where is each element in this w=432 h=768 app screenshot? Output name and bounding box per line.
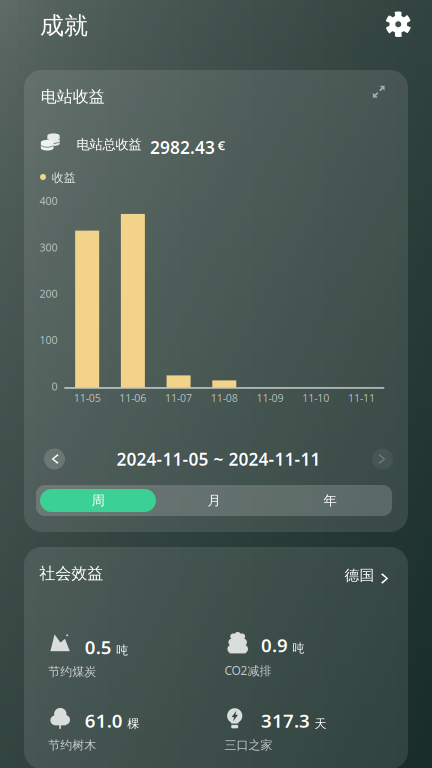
button[interactable]: Settings (376, 2, 420, 46)
button[interactable]: Next week (367, 444, 397, 474)
staticText: 德国 (344, 566, 374, 584)
button[interactable]: Previous week (39, 444, 69, 474)
staticText: 300 (39, 240, 57, 254)
staticText: 月 (207, 492, 220, 509)
staticText: 节约煤炭 (48, 664, 96, 679)
staticText: 电站收益 (41, 87, 105, 106)
staticText: € (217, 136, 225, 154)
staticText: 400 (39, 194, 57, 208)
staticText: 吨 (116, 643, 128, 658)
staticText: 0.9 (261, 633, 288, 657)
staticText: 11-11 (348, 391, 375, 405)
staticText: 317.3 (261, 708, 310, 733)
staticText: 收益 (52, 170, 76, 185)
staticText: 0.5 (85, 635, 112, 659)
button[interactable]: 年 (272, 489, 388, 512)
staticText: 周 (91, 492, 104, 509)
button[interactable]: Expand chart (364, 77, 394, 107)
staticText: 200 (39, 286, 57, 301)
staticText: 年 (323, 492, 336, 509)
staticText: 11-10 (302, 391, 329, 405)
staticText: 三口之家 (224, 738, 272, 753)
button[interactable]: 德国 (344, 558, 412, 588)
button[interactable]: 月 (156, 489, 272, 512)
staticText: 2982.43 (150, 136, 215, 159)
staticText: 0 (51, 379, 57, 393)
staticText: 节约树木 (48, 738, 96, 753)
staticText: 电站总收益 (76, 136, 141, 153)
staticText: 100 (39, 333, 57, 347)
staticText: 11-05 (74, 391, 101, 405)
staticText: 61.0 (85, 708, 123, 733)
staticText: 11-08 (211, 391, 238, 405)
staticText: 11-09 (256, 391, 283, 405)
staticText: 社会效益 (39, 564, 103, 583)
staticText: 棵 (127, 716, 139, 731)
staticText: 11-06 (119, 391, 146, 405)
button[interactable]: 周 (40, 489, 156, 512)
staticText: 2024-11-05 ~ 2024-11-11 (116, 447, 320, 470)
staticText: CO2减排 (224, 662, 271, 678)
staticText: 11-07 (165, 391, 192, 405)
staticText: 吨 (293, 641, 305, 656)
staticText: 天 (315, 716, 327, 731)
staticText: 成就 (40, 11, 88, 40)
